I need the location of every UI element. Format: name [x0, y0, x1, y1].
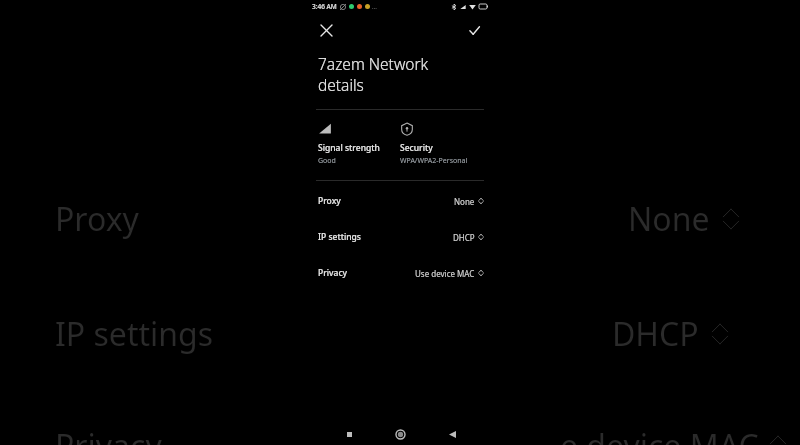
staticText: None	[628, 197, 710, 241]
staticText: e device MAC	[560, 424, 759, 445]
staticText: ...	[372, 3, 377, 11]
staticText: Use device MAC	[415, 268, 475, 279]
staticText: IP settings	[318, 231, 361, 243]
staticText: DHCP	[612, 312, 699, 356]
button[interactable]: Proxy	[307, 191, 493, 211]
button[interactable]: Save	[463, 19, 485, 41]
button[interactable]: Home	[390, 424, 410, 444]
staticText: Privacy	[318, 267, 348, 279]
staticText: Signal strength	[318, 142, 380, 154]
staticText: Good	[318, 156, 336, 166]
staticText: Privacy	[55, 424, 162, 445]
staticText: IP settings	[55, 312, 214, 356]
staticText: Proxy	[318, 195, 341, 207]
button[interactable]: Back	[442, 424, 462, 444]
staticText: WPA/WPA2-Personal	[400, 156, 468, 166]
staticText: 7azem Network	[318, 53, 429, 74]
button[interactable]: Privacy	[307, 263, 493, 283]
button[interactable]: Close	[315, 19, 337, 41]
staticText: 3:46 AM	[312, 2, 337, 11]
staticText: DHCP	[453, 232, 475, 243]
button[interactable]: IP settings	[307, 227, 493, 247]
staticText: details	[318, 74, 364, 95]
staticText: Security	[400, 142, 433, 154]
staticText: None	[454, 196, 475, 207]
button[interactable]: Recent apps	[339, 424, 359, 444]
staticText: Proxy	[55, 197, 139, 241]
